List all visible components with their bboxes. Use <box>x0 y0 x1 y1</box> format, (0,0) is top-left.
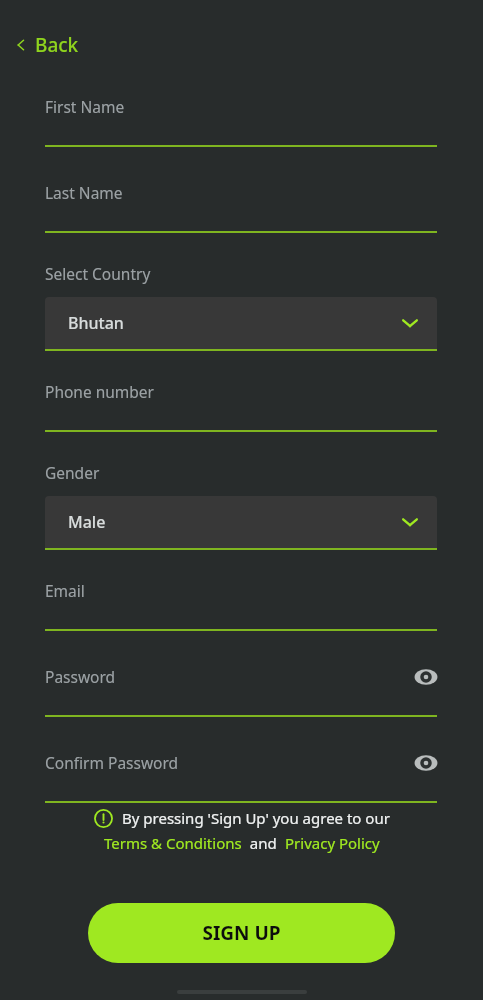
button[interactable]: Privacy Policy <box>285 833 380 853</box>
button[interactable]: Back <box>8 28 85 62</box>
staticText: Privacy Policy <box>285 833 380 853</box>
staticText: and <box>242 833 285 853</box>
staticText: First Name <box>45 96 125 117</box>
staticText: Confirm Password <box>45 752 179 773</box>
staticText: Last Name <box>45 182 123 203</box>
button[interactable]: Bhutan <box>45 297 437 349</box>
staticText: Back <box>35 32 79 58</box>
button[interactable]: Show password <box>409 660 443 694</box>
staticText: Select Country <box>45 263 151 284</box>
button[interactable]: SIGN UP <box>88 903 395 963</box>
button[interactable]: Phone number <box>45 381 437 430</box>
staticText: Gender <box>45 462 100 483</box>
button[interactable]: Confirm Password <box>45 752 437 801</box>
button[interactable]: First Name <box>45 96 437 145</box>
staticText: Password <box>45 666 116 687</box>
button[interactable]: Last Name <box>45 182 437 231</box>
staticText: By pressing 'Sign Up' you agree to our <box>122 808 390 828</box>
button[interactable]: Male <box>45 496 437 548</box>
staticText: Phone number <box>45 381 155 402</box>
staticText: Terms & Conditions <box>104 833 242 853</box>
staticText: Email <box>45 580 85 601</box>
button[interactable]: Email <box>45 580 437 629</box>
staticText: Bhutan <box>68 312 124 334</box>
button[interactable]: Show confirm password <box>409 746 443 780</box>
button[interactable]: Terms & Conditions <box>104 833 242 853</box>
staticText: Male <box>68 511 106 533</box>
staticText: SIGN UP <box>202 920 281 946</box>
button[interactable]: Password <box>45 666 437 715</box>
